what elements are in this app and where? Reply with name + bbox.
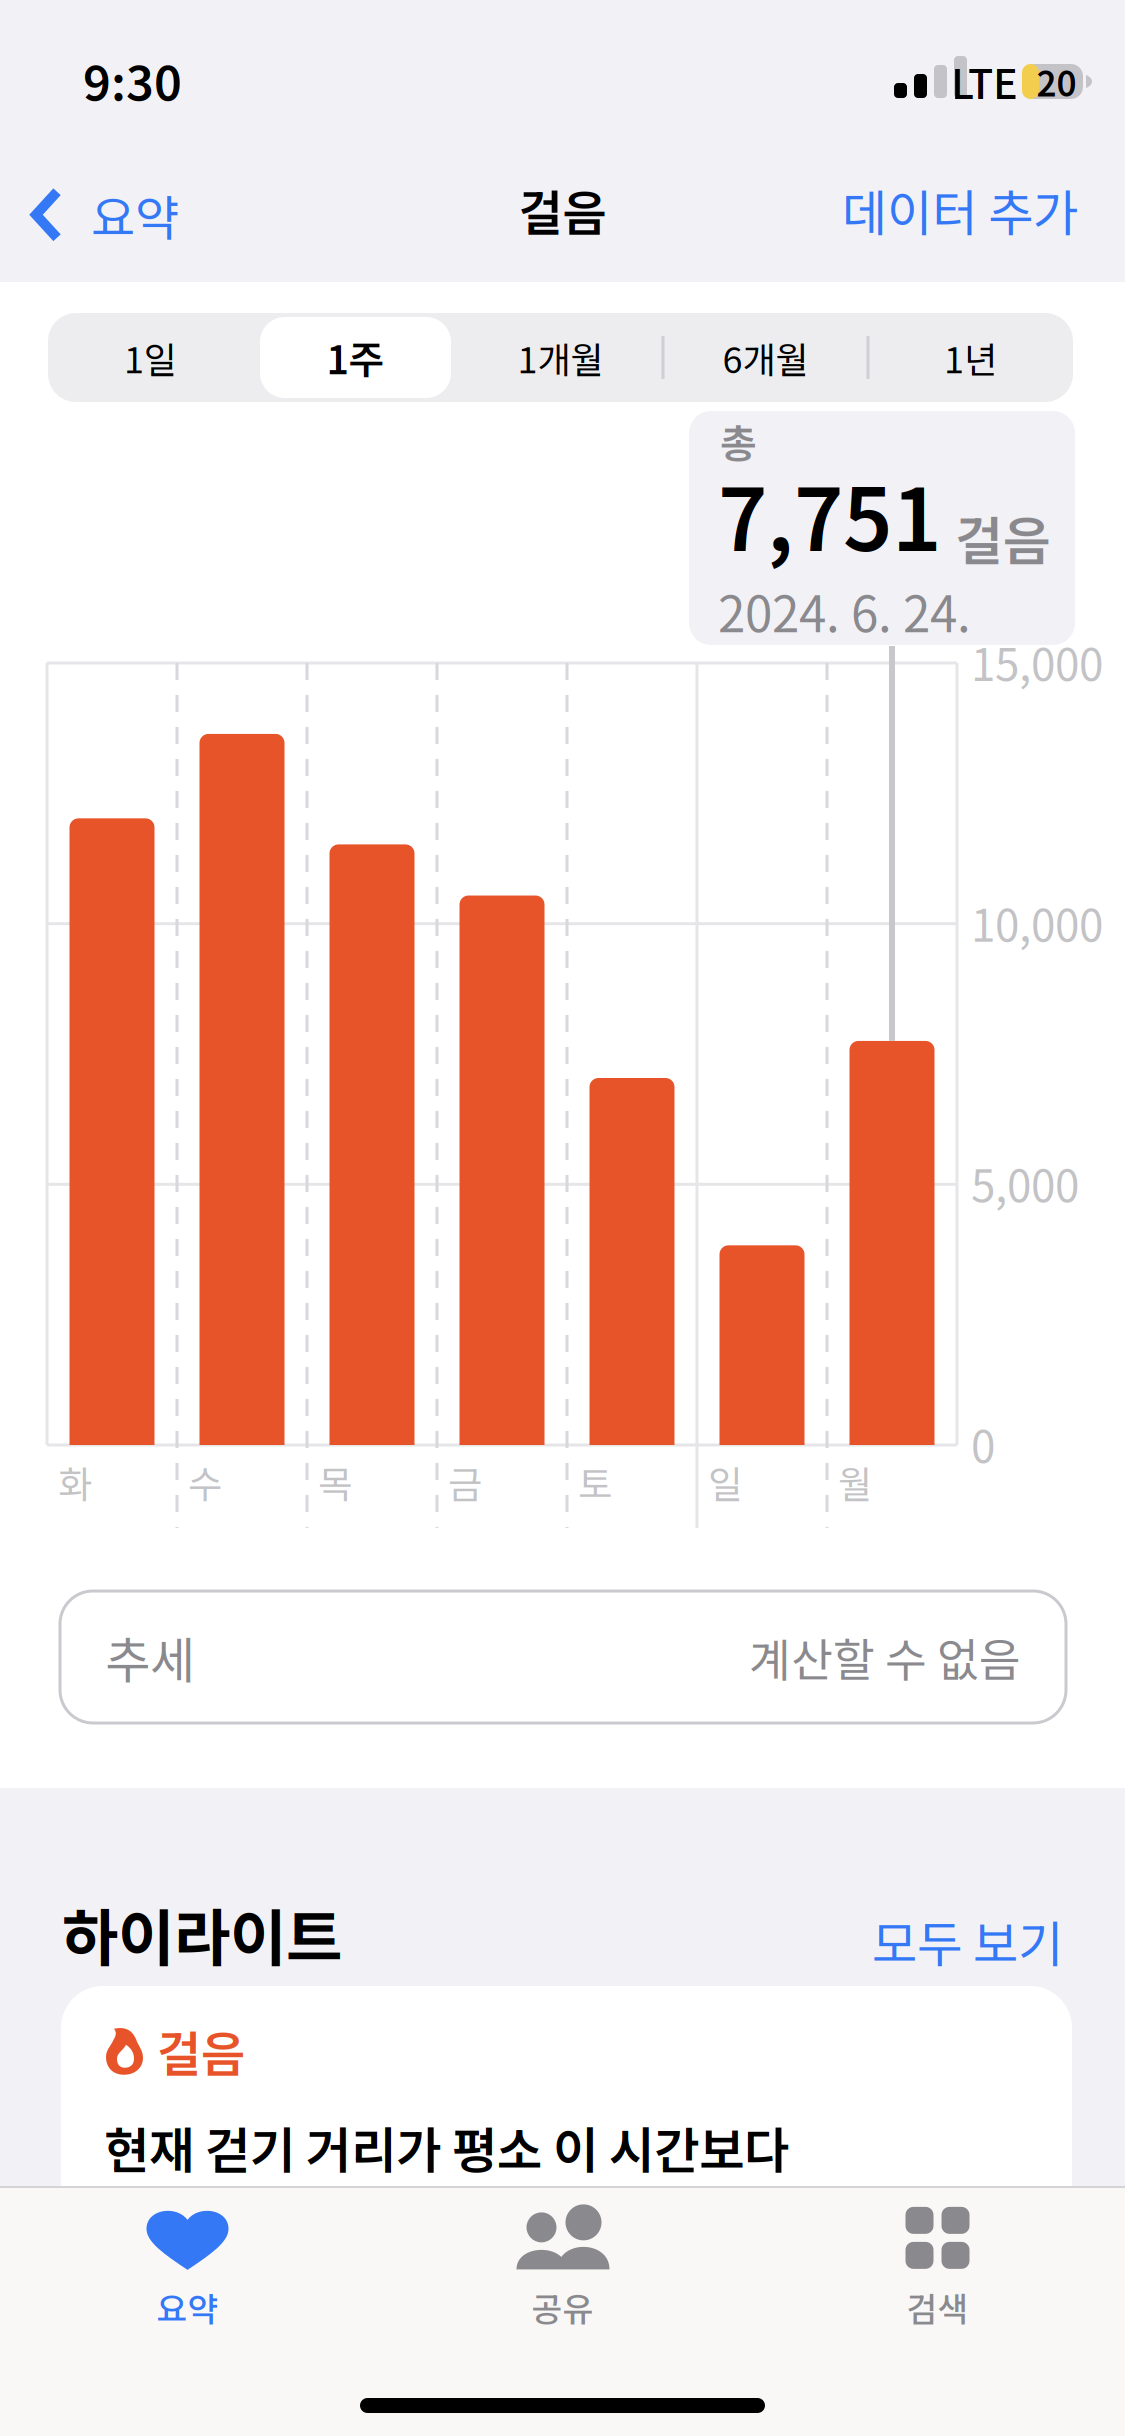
- staticText: 6개월: [722, 331, 808, 383]
- staticText: 추세: [105, 1621, 195, 1693]
- staticText: 20: [1036, 56, 1076, 107]
- staticText: 현재 걷기 거리가 평소 이 시간보다: [104, 2111, 789, 2183]
- staticText: 일: [708, 1455, 742, 1509]
- button[interactable]: 데이터 추가: [826, 156, 1094, 263]
- staticText: 걸음: [518, 175, 606, 244]
- staticText: 공유: [531, 2283, 593, 2331]
- staticText: 하이라이트: [62, 1889, 342, 1978]
- button[interactable]: 1개월: [458, 313, 663, 402]
- staticText: 데이터 추가: [842, 174, 1078, 245]
- staticText: LTE: [951, 51, 1018, 111]
- button[interactable]: 요약: [29, 156, 199, 273]
- staticText: 15,000: [971, 630, 1103, 694]
- button[interactable]: 검색: [750, 2188, 1125, 2348]
- staticText: 검색: [906, 2283, 968, 2331]
- staticText: 요약: [156, 2283, 218, 2331]
- staticText: 10,000: [971, 891, 1103, 954]
- staticText: 0: [971, 1412, 995, 1476]
- staticText: 계산할 수 없음: [749, 1624, 1021, 1690]
- staticText: 1개월: [517, 331, 603, 383]
- staticText: 총: [720, 412, 757, 470]
- staticText: 7,751: [718, 452, 941, 576]
- button[interactable]: 1일: [48, 313, 253, 402]
- staticText: 금: [448, 1455, 482, 1509]
- button[interactable]: 요약: [0, 2188, 375, 2348]
- staticText: 1일: [124, 331, 177, 383]
- staticText: 9:30: [83, 45, 182, 114]
- staticText: 1년: [944, 331, 997, 383]
- button[interactable]: 1년: [868, 313, 1073, 402]
- button[interactable]: 추세: [60, 1591, 1066, 1723]
- button[interactable]: 모두 보기: [860, 1895, 1075, 1986]
- button[interactable]: 1주: [253, 313, 458, 402]
- staticText: 토: [578, 1455, 612, 1509]
- staticText: 요약: [91, 180, 179, 249]
- staticText: 걸음: [157, 2016, 245, 2085]
- button[interactable]: 공유: [375, 2188, 750, 2348]
- staticText: 모두 보기: [872, 1905, 1063, 1976]
- staticText: 2024. 6. 24.: [718, 575, 971, 646]
- staticText: 1주: [326, 329, 384, 385]
- button[interactable]: 6개월: [663, 313, 868, 402]
- staticText: 5,000: [971, 1151, 1079, 1215]
- staticText: 월: [838, 1455, 872, 1509]
- staticText: 걸음: [955, 500, 1051, 575]
- staticText: 화: [58, 1455, 92, 1509]
- button[interactable]: 걸음: [61, 1986, 1072, 2248]
- staticText: 목: [318, 1455, 352, 1509]
- staticText: 수: [188, 1455, 222, 1509]
